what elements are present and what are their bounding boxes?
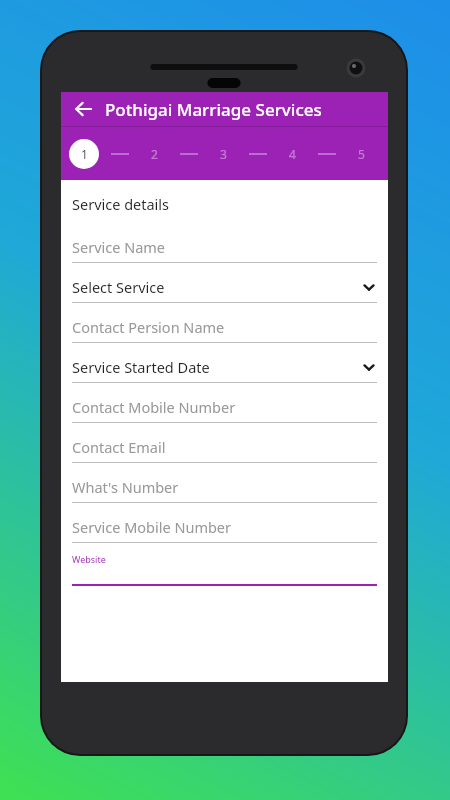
button[interactable]: 1: [69, 139, 99, 169]
staticText: Contact Mobile Number: [72, 397, 377, 417]
button[interactable]: Service Name: [72, 231, 377, 271]
button[interactable]: 3: [210, 141, 236, 167]
staticText: Contact Email: [72, 437, 377, 457]
button[interactable]: 5: [348, 141, 374, 167]
button[interactable]: Website: [72, 551, 377, 586]
button[interactable]: Contact Email: [72, 431, 377, 471]
staticText: Select Service: [72, 277, 361, 297]
button[interactable]: Service Started Date: [72, 351, 377, 391]
staticText: Contact Persion Name: [72, 317, 377, 337]
button[interactable]: Service Mobile Number: [72, 511, 377, 551]
staticText: Service Mobile Number: [72, 517, 377, 537]
button[interactable]: Contact Persion Name: [72, 311, 377, 351]
staticText: 2: [151, 146, 158, 162]
button[interactable]: Select Service: [72, 271, 377, 311]
staticText: Service Started Date: [72, 357, 361, 377]
staticText: 1: [81, 146, 88, 162]
staticText: 4: [289, 146, 296, 162]
button[interactable]: Contact Mobile Number: [72, 391, 377, 431]
button[interactable]: What's Number: [72, 471, 377, 511]
button[interactable]: 4: [279, 141, 305, 167]
staticText: Pothigai Marriage Services: [105, 98, 322, 121]
staticText: 5: [358, 146, 365, 162]
staticText: 3: [220, 146, 227, 162]
staticText: What's Number: [72, 477, 377, 497]
button[interactable]: 2: [141, 141, 167, 167]
staticText: Service details: [72, 194, 170, 214]
button[interactable]: Back: [61, 92, 105, 126]
staticText: Website: [72, 553, 106, 565]
staticText: Service Name: [72, 237, 377, 257]
